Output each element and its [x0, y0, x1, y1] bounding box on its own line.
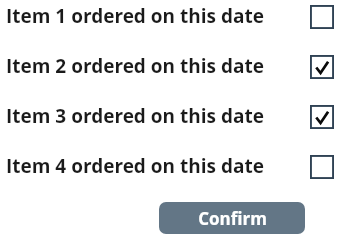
staticText: Item 1 ordered on this date — [6, 3, 264, 29]
button[interactable]: Item 1 ordered on this date, not checked — [310, 5, 334, 29]
button[interactable]: Confirm — [159, 202, 305, 234]
staticText: Item 2 ordered on this date — [6, 53, 264, 79]
button[interactable]: Item 2 ordered on this date, checked — [310, 55, 334, 79]
button[interactable]: Item 3 ordered on this date — [0, 91, 352, 141]
staticText: Confirm — [198, 207, 267, 230]
staticText: Item 3 ordered on this date — [6, 103, 264, 129]
button[interactable]: Item 2 ordered on this date — [0, 41, 352, 91]
button[interactable]: Item 4 ordered on this date — [0, 141, 352, 191]
button[interactable]: Item 3 ordered on this date, checked — [310, 105, 334, 129]
staticText: Item 4 ordered on this date — [6, 153, 264, 179]
button[interactable]: Item 4 ordered on this date, not checked — [310, 155, 334, 179]
button[interactable]: Item 1 ordered on this date — [0, 0, 352, 41]
